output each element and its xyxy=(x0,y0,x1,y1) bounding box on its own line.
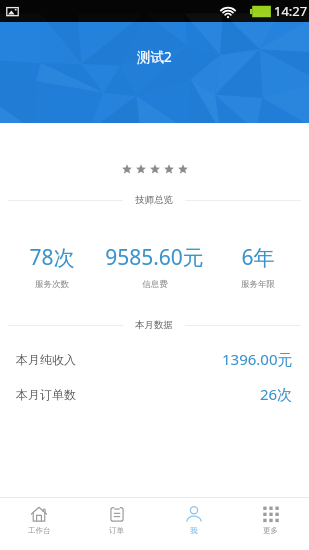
staticText: 本月数据 xyxy=(135,319,173,331)
staticText: 技师总览 xyxy=(135,194,173,206)
staticText: 更多 xyxy=(263,526,278,535)
staticText: 26次 xyxy=(260,384,293,404)
staticText: 本月订单数 xyxy=(16,387,76,402)
staticText: 78次 xyxy=(29,243,75,272)
button[interactable]: 订单 xyxy=(78,498,155,550)
staticText: 9585.60元 xyxy=(105,243,204,272)
staticText: 测试2 xyxy=(137,48,172,66)
button[interactable]: 更多 xyxy=(232,498,309,550)
staticText: 1396.00元 xyxy=(222,349,293,369)
staticText: 6年 xyxy=(241,243,275,272)
button[interactable]: 工作台 xyxy=(0,498,78,550)
button[interactable]: 我 xyxy=(155,498,232,550)
staticText: 工作台 xyxy=(28,526,51,535)
staticText: 本月纯收入 xyxy=(16,352,76,367)
staticText: 14:27 xyxy=(274,2,308,20)
staticText: 服务年限 xyxy=(241,279,275,290)
staticText: 我 xyxy=(190,526,198,535)
staticText: 服务次数 xyxy=(35,279,69,290)
staticText: 信息费 xyxy=(142,279,168,290)
staticText: 订单 xyxy=(109,526,124,535)
